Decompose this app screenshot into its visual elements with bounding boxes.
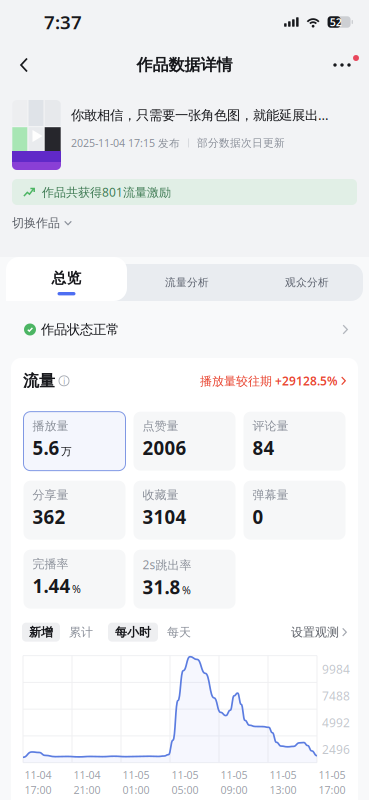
staticText: 21:00 <box>73 783 100 797</box>
staticText: 17:00 <box>318 783 345 797</box>
staticText: 84 <box>252 435 274 460</box>
button[interactable]: 作品状态正常 <box>0 301 369 358</box>
staticText: 播放量 <box>32 419 68 433</box>
button[interactable]: 播放量较往期 +29128.5% <box>200 373 346 389</box>
button[interactable]: 分享量 <box>23 481 125 540</box>
button[interactable]: 点赞量 <box>133 412 235 471</box>
staticText: 每天 <box>167 625 191 639</box>
button[interactable]: 播放量 <box>23 412 125 471</box>
button[interactable]: 新增 <box>22 623 60 642</box>
button[interactable]: 累计 <box>62 623 100 642</box>
staticText: 4992 <box>322 715 350 730</box>
staticText: 9984 <box>322 661 350 677</box>
staticText: 流量分析 <box>165 276 209 289</box>
staticText: 新增 <box>29 625 53 639</box>
staticText: 你敢相信，只需要一张角色图，就能延展出… <box>71 106 329 124</box>
staticText: 收藏量 <box>142 488 178 502</box>
button[interactable]: 收藏量 <box>133 481 235 540</box>
button[interactable]: 切换作品 <box>0 207 369 239</box>
staticText: 作品状态正常 <box>41 321 119 338</box>
staticText: 万 <box>61 445 72 458</box>
button[interactable]: 更多 <box>323 46 361 84</box>
staticText: 观众分析 <box>285 276 329 289</box>
button[interactable]: 评论量 <box>243 412 345 471</box>
staticText: 分享量 <box>32 488 68 502</box>
staticText: 5.6 <box>32 435 59 460</box>
button[interactable]: 观众分析 <box>247 264 367 301</box>
button[interactable]: 流量分析 <box>127 264 247 301</box>
staticText: 11-05 <box>171 768 198 782</box>
staticText: % <box>182 583 191 597</box>
staticText: 11-04 <box>73 768 100 782</box>
staticText: 作品数据详情 <box>136 55 232 75</box>
staticText: 13:00 <box>269 783 296 797</box>
button[interactable]: 设置观测 <box>291 625 347 639</box>
button[interactable]: 总览 <box>6 257 127 301</box>
staticText: 流量 <box>23 371 55 391</box>
staticText: 09:00 <box>220 783 247 797</box>
staticText: 点赞量 <box>142 419 178 433</box>
staticText: 11-05 <box>122 768 149 782</box>
staticText: 总览 <box>51 269 81 287</box>
staticText: 17:00 <box>24 783 51 797</box>
staticText: 11-05 <box>269 768 296 782</box>
staticText: 7488 <box>322 688 350 704</box>
staticText: 完播率 <box>32 557 68 571</box>
button[interactable]: 完播率 <box>23 550 125 609</box>
staticText: 05:00 <box>171 783 198 797</box>
button[interactable]: 每天 <box>160 623 198 642</box>
staticText: 362 <box>32 504 65 529</box>
staticText: 1.44 <box>32 573 70 598</box>
staticText: 0 <box>252 504 263 529</box>
button[interactable]: 返回 <box>4 46 44 84</box>
staticText: 播放量较往期 +29128.5% <box>200 373 338 389</box>
staticText: 部分数据次日更新 <box>197 136 285 149</box>
staticText: 2025-11-04 17:15 发布 <box>71 136 180 150</box>
staticText: 弹幕量 <box>252 488 288 502</box>
button[interactable]: 每小时 <box>108 623 158 642</box>
staticText: 设置观测 <box>291 625 339 639</box>
staticText: 2006 <box>142 435 186 460</box>
staticText: 累计 <box>69 625 93 639</box>
staticText: i <box>63 375 65 387</box>
staticText: 评论量 <box>252 419 288 433</box>
staticText: 2s跳出率 <box>142 557 191 573</box>
staticText: 11-05 <box>220 768 247 782</box>
staticText: 52 <box>330 15 342 29</box>
staticText: % <box>72 582 81 596</box>
staticText: 7:37 <box>44 10 82 34</box>
staticText: 作品共获得801流量激励 <box>42 184 171 200</box>
button[interactable]: 2s跳出率 <box>133 550 235 609</box>
staticText: 11-04 <box>24 768 51 782</box>
staticText: 每小时 <box>115 625 151 639</box>
staticText: 01:00 <box>122 783 149 797</box>
button[interactable]: 弹幕量 <box>243 481 345 540</box>
staticText: 11-05 <box>318 768 345 782</box>
staticText: 3104 <box>142 504 186 529</box>
staticText: 切换作品 <box>12 216 60 230</box>
staticText: 31.8 <box>142 575 180 599</box>
staticText: 2496 <box>322 741 350 757</box>
